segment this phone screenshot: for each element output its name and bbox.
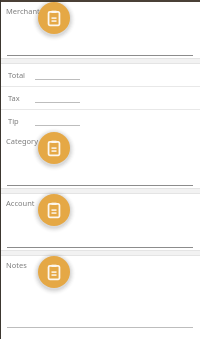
staticText: Tip bbox=[8, 116, 35, 126]
staticText: Total bbox=[8, 70, 35, 80]
button[interactable]: Category bbox=[0, 132, 200, 188]
button[interactable]: Merchant picker bbox=[38, 2, 70, 34]
button[interactable]: Category picker bbox=[38, 132, 70, 164]
button[interactable]: Account bbox=[0, 194, 200, 250]
button[interactable]: Account picker bbox=[38, 194, 70, 226]
staticText: Account bbox=[6, 198, 35, 208]
staticText: Notes bbox=[6, 260, 27, 270]
staticText: Category bbox=[6, 136, 38, 146]
button[interactable]: Notes picker bbox=[38, 256, 70, 288]
button[interactable]: Total bbox=[0, 64, 200, 86]
staticText: Tax bbox=[8, 93, 35, 103]
button[interactable]: Merchant bbox=[0, 2, 200, 58]
staticText: Merchant bbox=[6, 6, 40, 16]
button[interactable]: Tax bbox=[0, 87, 200, 109]
button[interactable]: Tip bbox=[0, 110, 200, 132]
button[interactable]: Notes bbox=[0, 256, 200, 336]
